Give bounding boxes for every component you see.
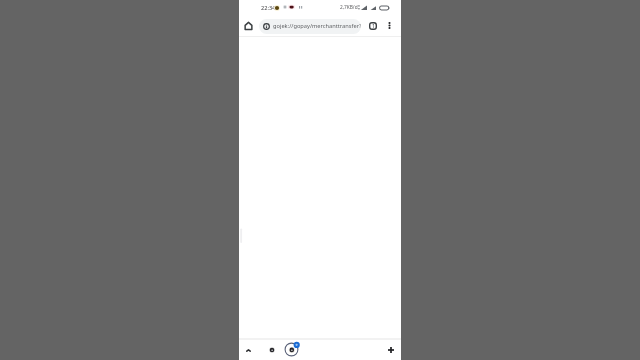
staticText: 2,7KB/d [340,4,358,11]
button[interactable]: Customize and control Chrome [381,17,397,33]
button[interactable]: New tab [383,342,399,358]
button[interactable]: Go back [240,342,256,358]
staticText: gojek://gopay/merchanttransfer? [273,22,361,30]
staticText: 22:34 [261,4,276,12]
button[interactable]: Switch tabs [283,341,300,358]
button[interactable]: Switch or close tabs [365,18,381,34]
button[interactable]: Home page [264,342,280,358]
staticText: 1 [372,23,375,30]
button[interactable]: Home [240,17,257,34]
button[interactable]: gojek://gopay/merchanttransfer? [259,19,361,34]
